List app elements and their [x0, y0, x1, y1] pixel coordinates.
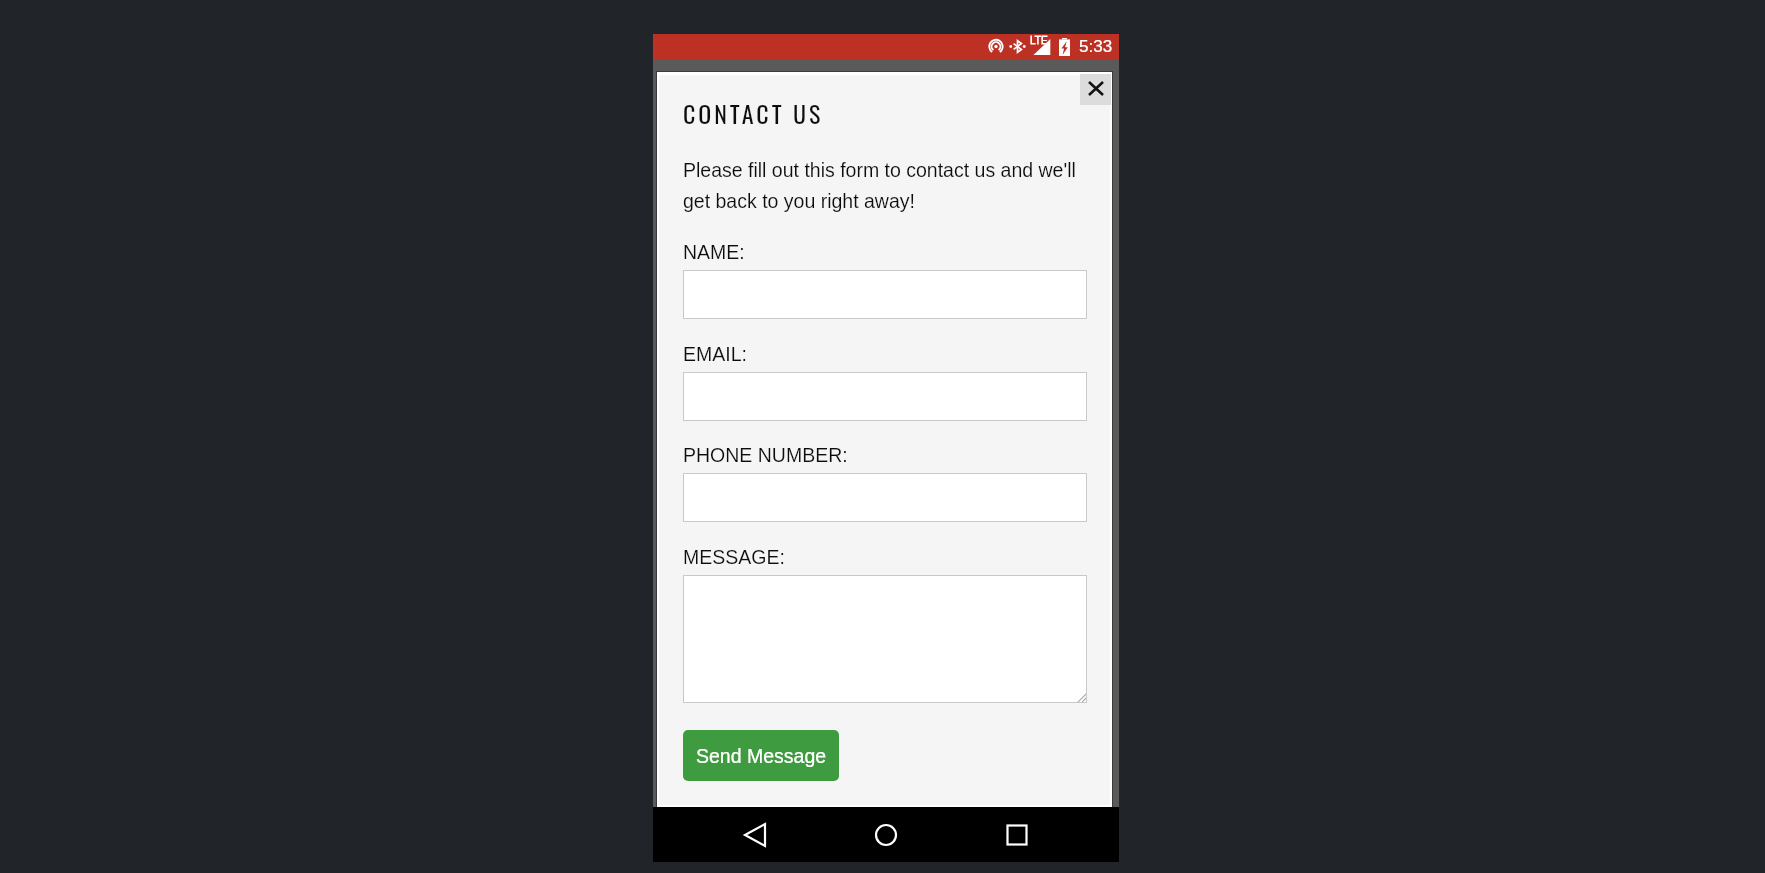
- button[interactable]: Close: [1080, 74, 1111, 105]
- button[interactable]: Back: [731, 811, 779, 859]
- staticText: Please fill out this form to contact us …: [683, 152, 1095, 214]
- other: Hotspot active: [988, 38, 1004, 55]
- other: Battery charging: [1059, 38, 1070, 56]
- staticText: LTE: [1030, 35, 1048, 46]
- other: LTE signal: [1029, 37, 1051, 56]
- button[interactable]: Send Message: [683, 730, 839, 781]
- staticText: NAME:: [683, 241, 745, 263]
- staticText: Send Message: [696, 745, 827, 767]
- staticText: 5:33: [1079, 37, 1113, 56]
- button[interactable]: Home: [862, 811, 910, 859]
- button[interactable]: NAME input: [683, 270, 1087, 319]
- button[interactable]: EMAIL input: [683, 372, 1087, 421]
- staticText: PHONE NUMBER:: [683, 444, 848, 466]
- button[interactable]: Recent apps: [993, 811, 1041, 859]
- staticText: CONTACT US: [683, 95, 824, 131]
- other: Bluetooth connected: [1010, 38, 1025, 55]
- staticText: MESSAGE:: [683, 546, 785, 568]
- staticText: EMAIL:: [683, 343, 747, 365]
- button[interactable]: PHONE NUMBER input: [683, 473, 1087, 522]
- button[interactable]: MESSAGE input: [683, 575, 1087, 703]
